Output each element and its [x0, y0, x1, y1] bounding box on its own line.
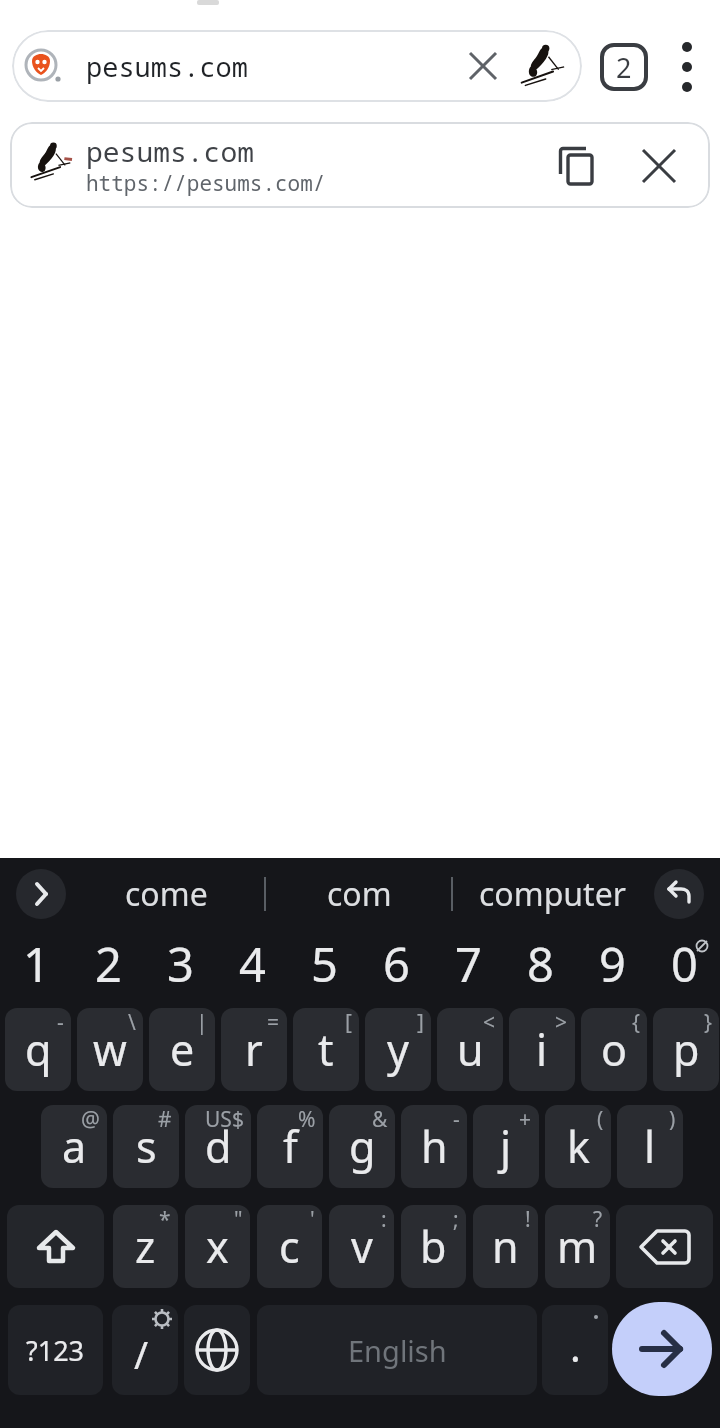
staticText: "	[234, 1205, 243, 1234]
button[interactable]: f	[257, 1105, 323, 1188]
button[interactable]	[559, 147, 595, 185]
button[interactable]: y	[365, 1008, 431, 1091]
button[interactable]: 9	[576, 928, 648, 1000]
button[interactable]: l	[617, 1105, 683, 1188]
button[interactable]	[16, 869, 66, 919]
button[interactable]: 3	[144, 928, 216, 1000]
staticText: {	[632, 1008, 640, 1037]
staticText: ?123	[26, 1332, 85, 1369]
button[interactable]: v	[329, 1205, 394, 1288]
button[interactable]: g	[329, 1105, 395, 1188]
staticText: y	[387, 1020, 409, 1079]
button[interactable]: 1	[0, 928, 72, 1000]
button[interactable]: z	[113, 1205, 178, 1288]
button[interactable]: pesums.com	[10, 122, 710, 208]
button[interactable]: English	[257, 1305, 537, 1395]
button[interactable]: .	[542, 1305, 608, 1395]
button[interactable]: c	[257, 1205, 322, 1288]
button[interactable]: 2	[600, 43, 648, 91]
staticText: j	[500, 1117, 512, 1176]
staticText: }	[704, 1008, 712, 1037]
button[interactable]: pesums.com	[12, 30, 582, 102]
staticText: q	[25, 1020, 52, 1079]
staticText: k	[567, 1117, 590, 1176]
staticText: *	[159, 1205, 171, 1234]
staticText: .	[570, 1319, 581, 1373]
staticText: 0	[671, 932, 698, 996]
staticText: i	[536, 1020, 548, 1079]
button[interactable]	[184, 1305, 250, 1395]
button[interactable]: h	[401, 1105, 467, 1188]
button[interactable]	[468, 51, 498, 81]
button[interactable]: a	[41, 1105, 107, 1188]
staticText: -	[57, 1008, 64, 1037]
staticText: :	[381, 1205, 387, 1234]
button[interactable]: k	[545, 1105, 611, 1188]
button[interactable]	[642, 149, 676, 183]
staticText: computer	[479, 872, 626, 916]
staticText: 9	[599, 932, 626, 996]
staticText: (	[597, 1105, 604, 1134]
staticText: 8	[527, 932, 554, 996]
button[interactable]: com	[266, 858, 452, 930]
button[interactable]: 0	[648, 928, 720, 1000]
button[interactable]: j	[473, 1105, 539, 1188]
button[interactable]	[654, 869, 704, 919]
staticText: &	[372, 1105, 388, 1134]
staticText: 6	[383, 932, 410, 996]
staticText: [	[345, 1008, 352, 1037]
button[interactable]: 7	[432, 928, 504, 1000]
button[interactable]: u	[437, 1008, 503, 1091]
staticText: w	[93, 1020, 127, 1079]
button[interactable]: o	[581, 1008, 647, 1091]
button[interactable]: r	[221, 1008, 287, 1091]
staticText: English	[348, 1331, 447, 1370]
button[interactable]	[28, 140, 72, 184]
button[interactable]	[673, 40, 701, 94]
button[interactable]: m	[545, 1205, 610, 1288]
button[interactable]: x	[185, 1205, 250, 1288]
button[interactable]: come	[66, 858, 266, 930]
button[interactable]: t	[293, 1008, 359, 1091]
button[interactable]: /	[112, 1305, 178, 1395]
button[interactable]: i	[509, 1008, 575, 1091]
staticText: o	[601, 1020, 628, 1079]
staticText: e	[170, 1020, 195, 1079]
staticText: pesums.com	[86, 48, 248, 85]
button[interactable]: 8	[504, 928, 576, 1000]
staticText: z	[135, 1217, 156, 1276]
button[interactable]: p	[653, 1008, 719, 1091]
button[interactable]: 2	[72, 928, 144, 1000]
button[interactable]: d	[185, 1105, 251, 1188]
staticText: t	[318, 1020, 334, 1079]
staticText: g	[349, 1117, 376, 1176]
staticText: f	[283, 1117, 298, 1176]
button[interactable]: n	[473, 1205, 538, 1288]
button[interactable]: 5	[288, 928, 360, 1000]
button[interactable]: w	[77, 1008, 143, 1091]
staticText: b	[420, 1217, 447, 1276]
staticText: a	[62, 1117, 87, 1176]
button[interactable]: q	[5, 1008, 71, 1091]
staticText: h	[421, 1117, 448, 1176]
staticText: ?	[593, 1205, 603, 1234]
button[interactable]: 4	[216, 928, 288, 1000]
button[interactable]	[518, 42, 566, 90]
staticText: '	[310, 1205, 315, 1234]
button[interactable]	[616, 1205, 713, 1288]
staticText: -	[453, 1105, 460, 1134]
staticText: /	[134, 1328, 149, 1380]
button[interactable]: e	[149, 1008, 215, 1091]
staticText: s	[136, 1117, 157, 1176]
button[interactable]: b	[401, 1205, 466, 1288]
button[interactable]: ?123	[8, 1305, 103, 1395]
staticText: +	[519, 1105, 532, 1134]
staticText: @	[81, 1105, 100, 1134]
button[interactable]: computer	[452, 858, 652, 930]
button[interactable]: s	[113, 1105, 179, 1188]
staticText: m	[557, 1217, 598, 1276]
button[interactable]	[7, 1205, 104, 1288]
button[interactable]	[612, 1302, 712, 1396]
button[interactable]: 6	[360, 928, 432, 1000]
staticText: 1	[23, 932, 50, 996]
